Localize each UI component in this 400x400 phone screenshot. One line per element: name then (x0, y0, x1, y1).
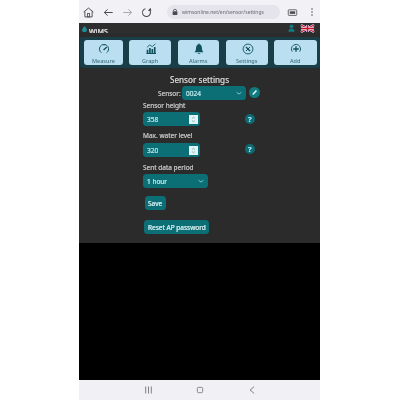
button[interactable]: Add (274, 40, 317, 65)
button[interactable]: Forward (119, 4, 135, 20)
staticText: Sensor: (158, 89, 181, 98)
button[interactable]: wimsonline.net/en/sensor/settings (167, 5, 280, 19)
button[interactable]: Cast (285, 5, 299, 19)
button[interactable]: Save (145, 196, 166, 210)
staticText: Reset AP password (148, 223, 206, 232)
button[interactable]: Settings (226, 40, 268, 65)
button[interactable]: 320 (143, 143, 200, 157)
staticText: Add (290, 57, 301, 64)
button[interactable]: Back (244, 382, 260, 398)
button[interactable]: Home (192, 382, 208, 398)
staticText: Graph (142, 57, 159, 64)
button[interactable]: Account (286, 23, 296, 33)
button[interactable]: Reset AP password (144, 220, 209, 234)
staticText: Max. water level (143, 131, 193, 140)
button[interactable]: 0024 (182, 86, 246, 100)
staticText: Save (148, 199, 163, 208)
staticText: WiMS (89, 27, 108, 37)
staticText: wimsonline.net/en/sensor/settings (182, 9, 264, 16)
staticText: Sent data period (143, 163, 194, 172)
staticText: 0024 (186, 89, 201, 98)
staticText: 1 hour (147, 177, 168, 186)
button[interactable]: Measure (84, 40, 123, 65)
staticText: Settings (236, 57, 258, 64)
staticText: Sensor settings (79, 74, 320, 85)
staticText: ? (248, 144, 252, 154)
staticText: ? (248, 114, 252, 124)
staticText: Measure (92, 57, 115, 64)
button[interactable]: 358 (143, 112, 200, 126)
staticText: Sensor height (143, 101, 186, 110)
button[interactable]: Recent apps (140, 382, 156, 398)
button[interactable]: Reload (138, 4, 154, 20)
button[interactable]: Alarms (178, 40, 219, 65)
button[interactable]: Language (300, 25, 314, 32)
staticText: 358 (147, 115, 159, 124)
button[interactable]: Help (245, 114, 255, 124)
staticText: Alarms (189, 57, 208, 64)
button[interactable]: 1 hour (143, 174, 208, 188)
staticText: 320 (147, 146, 159, 155)
button[interactable]: More options (305, 5, 319, 19)
button[interactable]: Edit sensor (249, 87, 260, 98)
button[interactable]: Help (245, 144, 255, 154)
button[interactable]: Back (100, 4, 116, 20)
button[interactable]: Graph (129, 40, 171, 65)
button[interactable]: Home (80, 4, 96, 20)
